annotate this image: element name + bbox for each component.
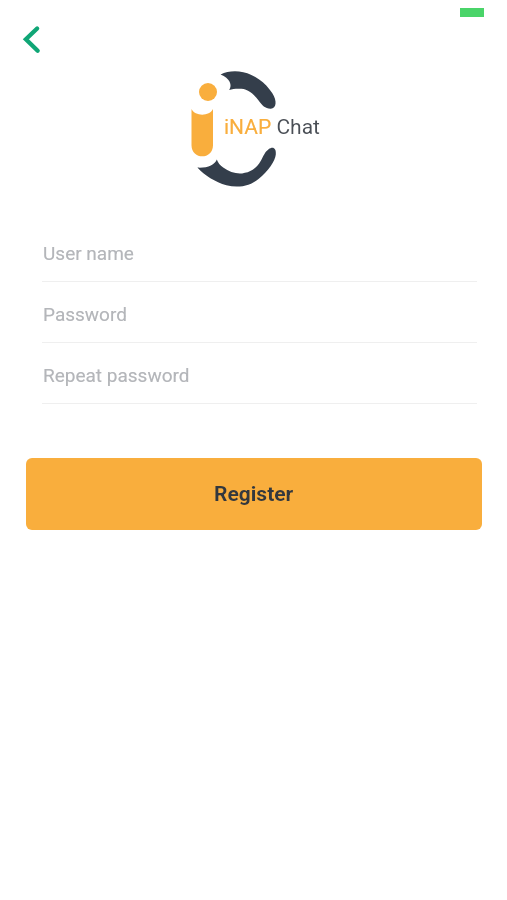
button[interactable]: Back [8,16,54,62]
button[interactable]: Register [26,458,482,530]
staticText: Register [214,482,294,507]
button[interactable]: User name [0,221,507,282]
staticText: iNAP Chat [224,115,320,140]
staticText: Password [43,303,127,325]
button[interactable]: Repeat password [0,343,507,404]
staticText: Repeat password [43,364,190,386]
button[interactable]: Password [0,282,507,343]
staticText: User name [43,242,134,264]
